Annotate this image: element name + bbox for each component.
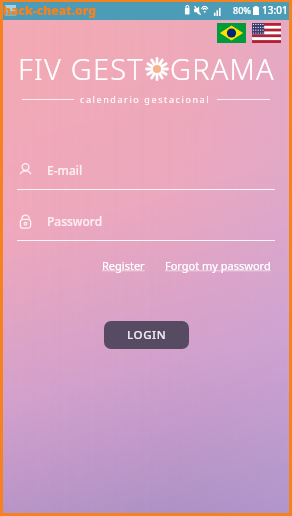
- staticText: calendario gestacional: [80, 93, 211, 105]
- staticText: GRAMA: [170, 49, 275, 88]
- staticText: 80%: [233, 4, 251, 16]
- button[interactable]: Register: [98, 255, 149, 276]
- button[interactable]: Password: [17, 208, 275, 241]
- button[interactable]: E-mail: [17, 157, 275, 190]
- staticText: E-mail: [47, 162, 83, 178]
- button[interactable]: LOGIN: [104, 321, 189, 349]
- staticText: Password: [47, 213, 103, 229]
- button[interactable]: English: [252, 23, 281, 43]
- button[interactable]: Português: [217, 23, 246, 43]
- staticText: 13:01: [262, 3, 288, 17]
- staticText: Forgot my password: [165, 258, 271, 273]
- staticText: FIV GEST: [18, 49, 144, 88]
- staticText: LOGIN: [127, 327, 167, 343]
- staticText: Register: [102, 258, 145, 273]
- staticText: hack-cheat.org: [3, 2, 96, 18]
- button[interactable]: Forgot my password: [161, 255, 275, 276]
